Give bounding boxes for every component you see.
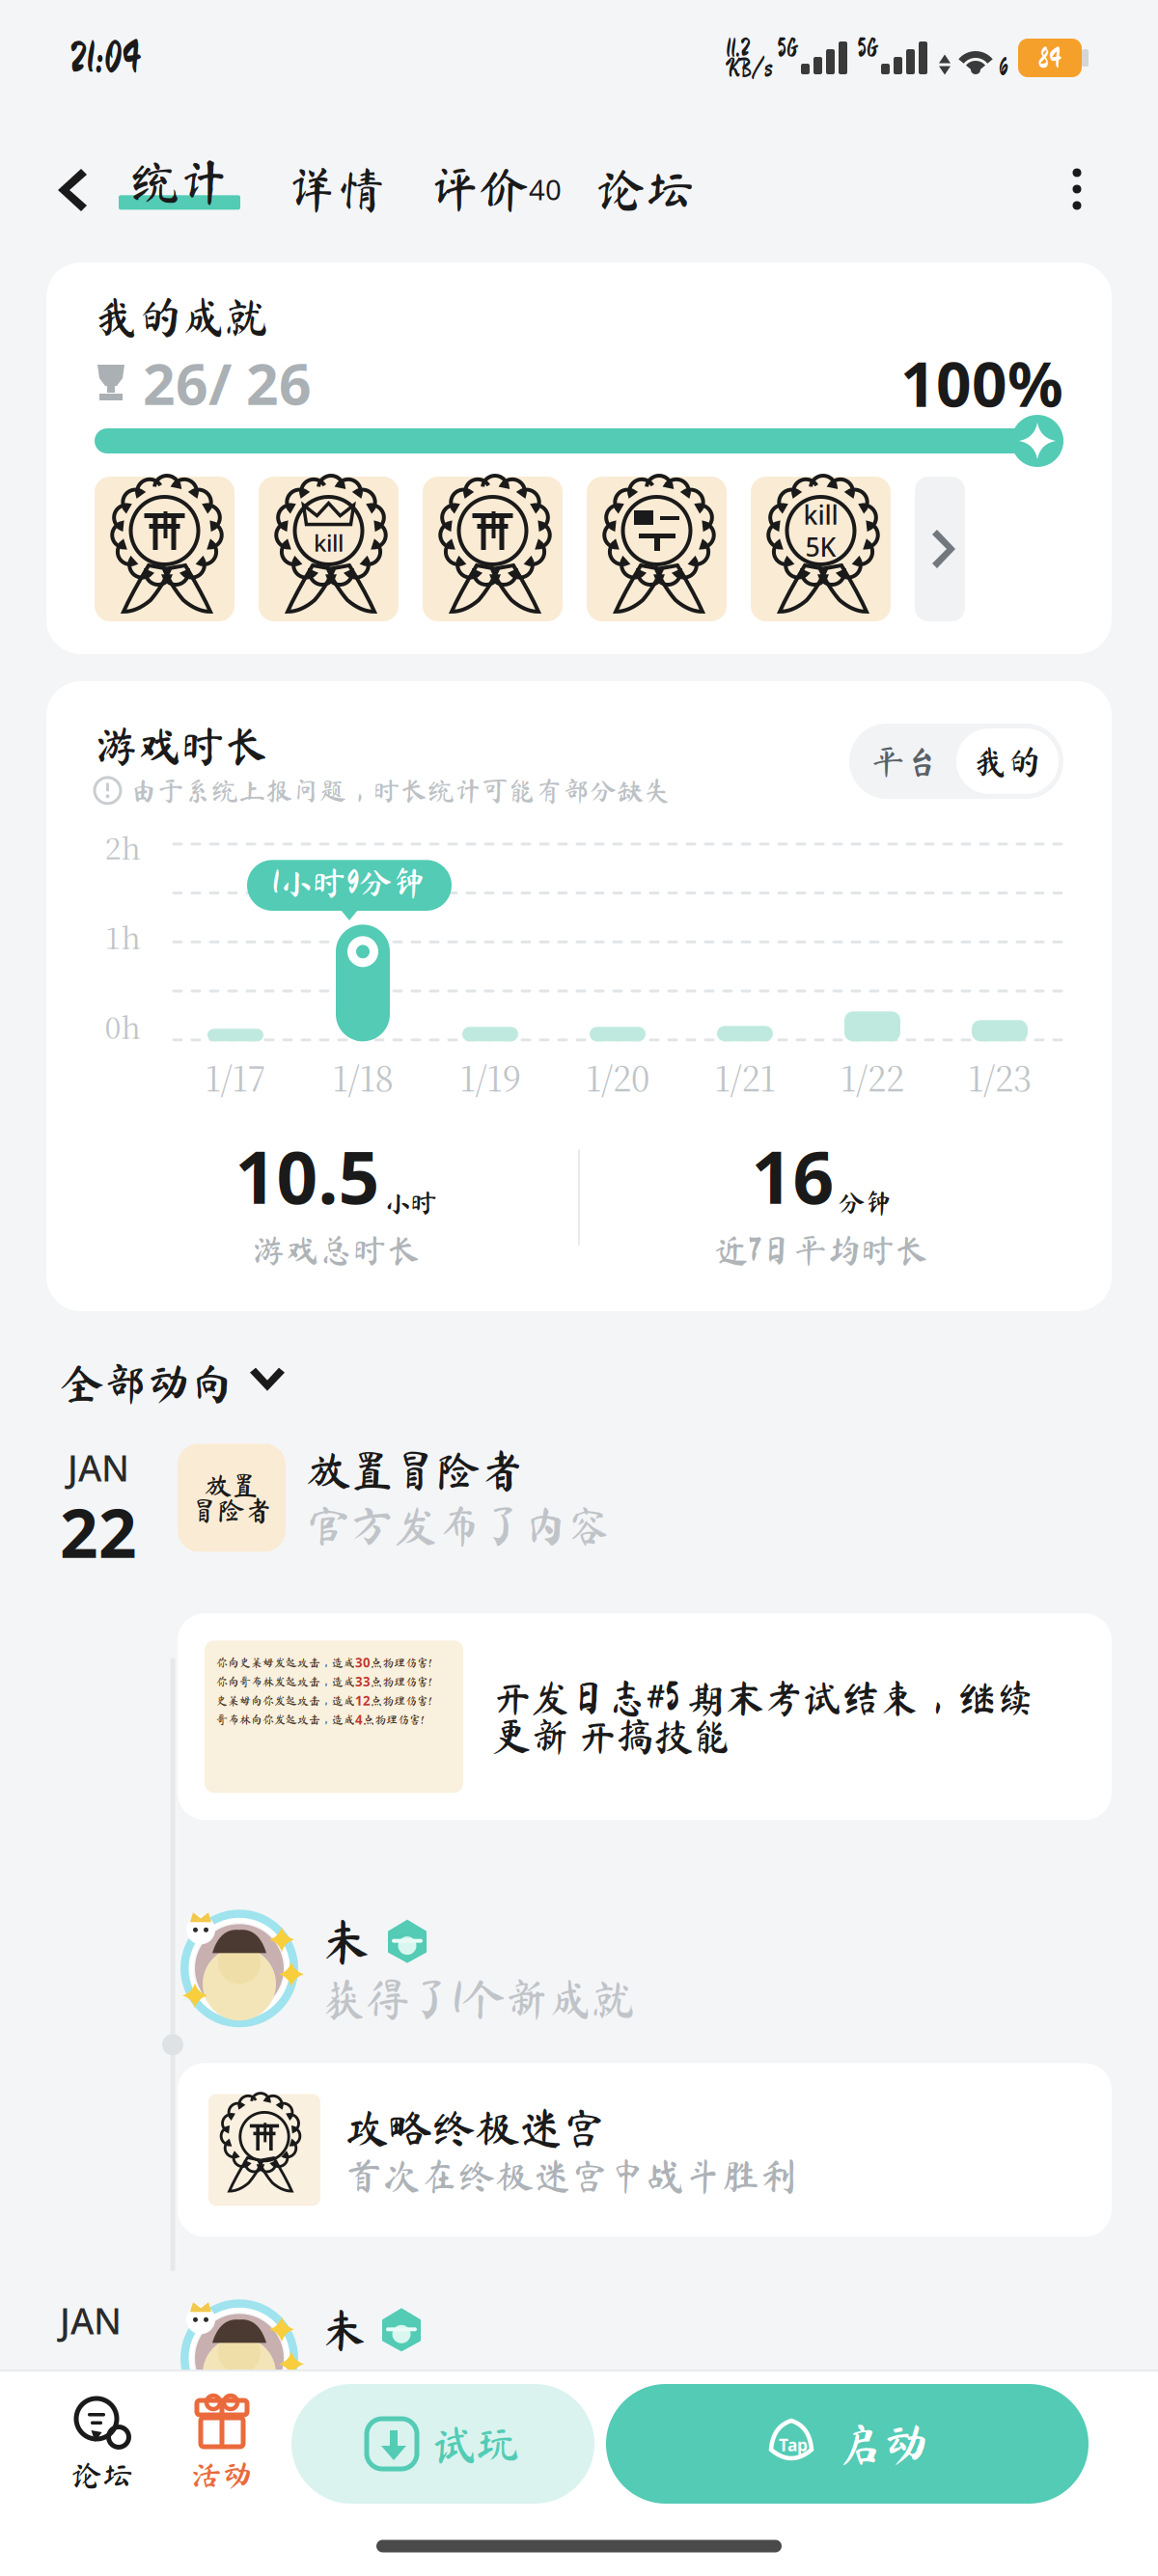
staticText: 我的 xyxy=(974,745,1041,778)
staticText: 放置 xyxy=(205,1472,259,1499)
staticText: 攻略终极迷宫 xyxy=(345,2105,606,2149)
staticText: 小时 xyxy=(384,1189,438,1216)
staticText: 官方发布了内容 xyxy=(307,1503,611,1547)
staticText: 点物理伤害! xyxy=(363,1714,424,1725)
staticText: 评价 xyxy=(430,165,529,214)
button[interactable]: Achievement: kill xyxy=(259,477,399,621)
staticText: 1/23 xyxy=(968,1053,1032,1101)
staticText: 由于系统上报问题，时长统计可能有部分缺失 xyxy=(130,777,671,804)
staticText: 100% xyxy=(900,342,1063,424)
button[interactable]: 论坛 xyxy=(596,148,695,231)
staticText: 冒险者 xyxy=(191,1497,272,1524)
staticText: 10.5 xyxy=(235,1128,380,1224)
staticText: 我的成就 xyxy=(95,295,268,338)
button[interactable]: More achievements xyxy=(915,477,965,621)
staticText: 全部动向 xyxy=(60,1361,234,1405)
button[interactable]: More xyxy=(1048,154,1106,224)
button[interactable]: 我的 xyxy=(956,728,1059,794)
staticText: 点物理伤害! xyxy=(371,1657,431,1668)
staticText: 1/21 xyxy=(715,1053,775,1101)
staticText: 84 xyxy=(1038,44,1061,72)
button[interactable]: Achievement: clear the maze xyxy=(95,477,234,621)
staticText: 1/18 xyxy=(332,1053,393,1101)
staticText: 11.2 xyxy=(726,35,750,61)
button[interactable]: 平台 xyxy=(854,728,956,794)
staticText: 平台 xyxy=(871,745,939,778)
staticText: kill xyxy=(803,497,838,532)
staticText: 点物理伤害! xyxy=(371,1676,431,1687)
button[interactable]: Achievement: desk setup xyxy=(587,477,727,621)
staticText: 40 xyxy=(529,170,562,208)
staticText: 论坛 xyxy=(71,2459,133,2490)
staticText: 点物理伤害! xyxy=(371,1695,431,1706)
staticText: 21:04 xyxy=(69,36,141,80)
staticText: 33 xyxy=(355,1673,371,1690)
staticText: 12 xyxy=(355,1692,371,1709)
staticText: 获得了1个新成就 xyxy=(322,1977,635,2021)
staticText: 30 xyxy=(355,1654,371,1671)
staticText: 未 xyxy=(322,1916,372,1965)
button[interactable]: 攻略终极迷宫 xyxy=(178,2063,1112,2237)
button[interactable]: 活动 xyxy=(166,2383,278,2505)
staticText: 0h xyxy=(105,1005,140,1047)
staticText: 详情 xyxy=(288,165,386,214)
button[interactable]: 统计 xyxy=(116,148,243,231)
staticText: 开发日志#5 期末考试结束，继续更新 开搞技能 xyxy=(492,1678,1034,1755)
staticText: 论坛 xyxy=(596,165,695,214)
button[interactable]: 试玩 xyxy=(291,2384,594,2504)
staticText: 1/19 xyxy=(460,1053,521,1101)
staticText: 6 xyxy=(999,56,1008,79)
staticText: 22 xyxy=(60,1488,137,1576)
staticText: KB/s xyxy=(726,55,773,81)
button[interactable]: Back xyxy=(52,163,95,215)
staticText: 你向史莱姆发起攻击，造成 xyxy=(216,1657,355,1668)
button[interactable]: 全部动向 xyxy=(60,1361,288,1405)
staticText: 游戏时长 xyxy=(95,724,268,767)
staticText: 史莱姆向你发起攻击，造成 xyxy=(216,1695,355,1706)
staticText: Tap xyxy=(779,2434,808,2456)
button[interactable]: 评价 xyxy=(430,148,562,231)
staticText: 近7日平均时长 xyxy=(715,1233,929,1267)
staticText: JAN xyxy=(68,1444,129,1491)
staticText: 16 xyxy=(751,1128,834,1224)
staticText: 哥布林向你发起攻击，造成 xyxy=(216,1714,355,1725)
staticText: 游戏总时长 xyxy=(252,1233,421,1267)
staticText: 5G xyxy=(857,35,878,61)
staticText: 1h xyxy=(105,915,140,957)
staticText: 1/22 xyxy=(841,1053,904,1101)
staticText: 4 xyxy=(355,1711,363,1728)
staticText: 未 xyxy=(322,2307,368,2352)
staticText: 26/ 26 xyxy=(143,345,312,421)
staticText: kill xyxy=(314,527,344,558)
staticText: 你向哥布林发起攻击，造成 xyxy=(216,1676,355,1687)
button[interactable]: 论坛 xyxy=(46,2383,158,2505)
staticText: 2h xyxy=(105,825,140,868)
button[interactable]: 详情 xyxy=(288,148,386,231)
staticText: 1/17 xyxy=(205,1053,266,1101)
staticText: 1小时9分钟 xyxy=(272,866,427,899)
button[interactable]: Tap xyxy=(606,2384,1089,2504)
staticText: 首次在终极迷宫中战斗胜利 xyxy=(345,2157,797,2194)
staticText: 活动 xyxy=(191,2459,253,2490)
staticText: 试玩 xyxy=(432,2422,519,2466)
staticText: JAN xyxy=(60,2296,122,2344)
staticText: 5K xyxy=(805,530,836,564)
button[interactable]: 你向史莱姆发起攻击，造成 xyxy=(178,1613,1112,1820)
staticText: 启动 xyxy=(837,2421,929,2467)
button[interactable]: Achievement: kill 5K xyxy=(751,477,891,621)
button[interactable]: Achievement: clear the maze again xyxy=(423,477,563,621)
staticText: 1/20 xyxy=(586,1053,649,1101)
staticText: 放置冒险者 xyxy=(307,1448,524,1492)
staticText: 5G xyxy=(777,35,798,61)
staticText: 统计 xyxy=(130,157,229,206)
staticText: 分钟 xyxy=(838,1189,892,1216)
